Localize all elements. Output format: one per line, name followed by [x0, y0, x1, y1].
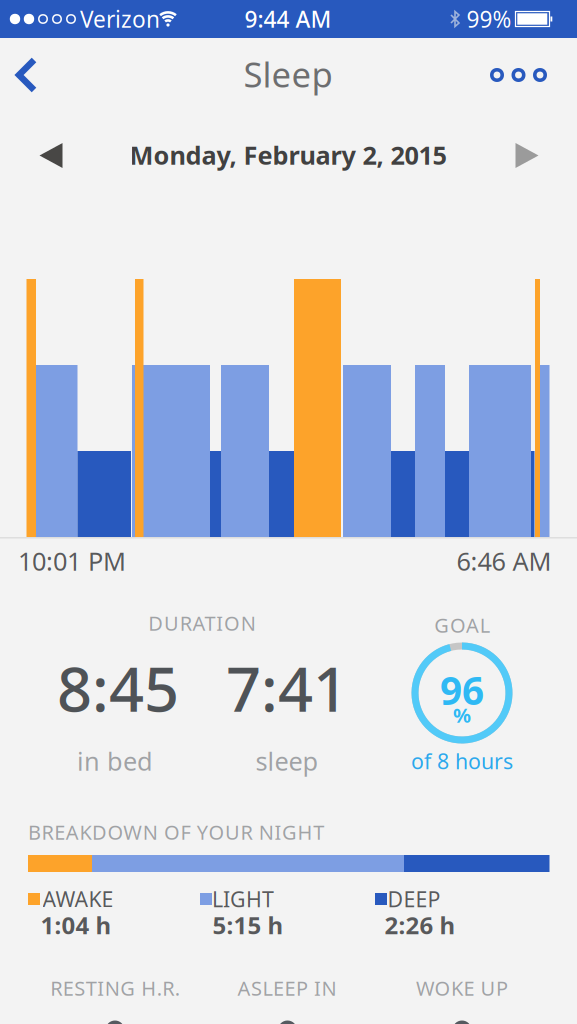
- button[interactable]: [515, 143, 538, 168]
- staticText: 96: [440, 664, 484, 716]
- staticText: 99%: [466, 4, 511, 34]
- staticText: RESTING H.R.: [50, 975, 180, 1001]
- staticText: 6:46 AM: [456, 544, 551, 578]
- staticText: in bed: [77, 744, 153, 778]
- staticText: 5:15 h: [212, 909, 283, 941]
- staticText: BREAKDOWN OF YOUR NIGHT: [28, 819, 324, 845]
- staticText: Sleep: [243, 51, 332, 97]
- staticText: 7:41: [226, 647, 348, 729]
- staticText: AWAKE: [42, 885, 113, 913]
- staticText: DEEP: [387, 885, 440, 913]
- staticText: 9:44 AM: [244, 4, 331, 34]
- staticText: %: [453, 702, 471, 728]
- button[interactable]: [15, 57, 39, 93]
- button[interactable]: [39, 143, 62, 168]
- staticText: Monday, February 2, 2015: [129, 138, 446, 172]
- staticText: 1:04 h: [40, 909, 111, 941]
- staticText: 8:45: [57, 647, 179, 729]
- button[interactable]: [490, 68, 548, 82]
- staticText: WOKE UP: [416, 975, 508, 1001]
- staticText: 2:26 h: [384, 909, 455, 941]
- staticText: of 8 hours: [411, 747, 513, 775]
- staticText: DURATION: [148, 610, 256, 636]
- staticText: Verizon: [80, 4, 160, 34]
- staticText: GOAL: [434, 612, 490, 638]
- staticText: sleep: [255, 744, 318, 778]
- staticText: LIGHT: [212, 885, 274, 913]
- staticText: 10:01 PM: [18, 544, 126, 578]
- staticText: ASLEEP IN: [237, 975, 336, 1001]
